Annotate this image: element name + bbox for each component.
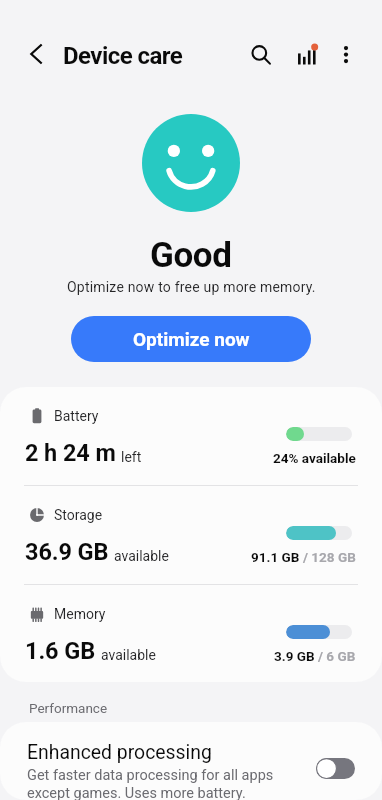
button[interactable]: Storage — [0, 486, 382, 584]
staticText: Optimize now to free up more memory. — [67, 279, 316, 295]
staticText: Optimize now — [133, 328, 250, 350]
button[interactable]: More options — [323, 31, 369, 77]
button[interactable]: Enhanced processing — [0, 722, 382, 800]
staticText: 24% available — [273, 450, 356, 466]
staticText: Good — [150, 235, 232, 276]
staticText: Memory — [54, 606, 106, 622]
staticText: available — [101, 647, 156, 663]
staticText: Battery — [54, 408, 99, 424]
staticText: available — [114, 548, 169, 564]
staticText: 3.9 GB — [274, 648, 318, 664]
staticText: / 128 GB — [303, 549, 356, 565]
button[interactable]: Optimize now — [71, 316, 311, 362]
button[interactable]: Diagnostics — [284, 32, 330, 78]
staticText: Get faster data processing for all apps … — [27, 767, 283, 800]
staticText: / 6 GB — [318, 648, 356, 664]
staticText: 2 h 24 m — [25, 439, 116, 467]
staticText: Enhanced processing — [27, 741, 212, 764]
staticText: 91.1 GB — [251, 549, 303, 565]
button[interactable]: Enhanced processing toggle — [316, 758, 355, 779]
button[interactable]: Memory — [0, 585, 382, 682]
staticText: 36.9 GB — [25, 538, 109, 566]
staticText: left — [121, 449, 142, 465]
button[interactable]: Search — [238, 32, 284, 78]
staticText: 1.6 GB — [25, 637, 96, 665]
staticText: Storage — [54, 507, 103, 523]
button[interactable]: Navigate up — [13, 32, 57, 76]
staticText: Performance — [29, 700, 108, 716]
staticText: Device care — [63, 42, 183, 70]
button[interactable]: Battery — [0, 387, 382, 485]
